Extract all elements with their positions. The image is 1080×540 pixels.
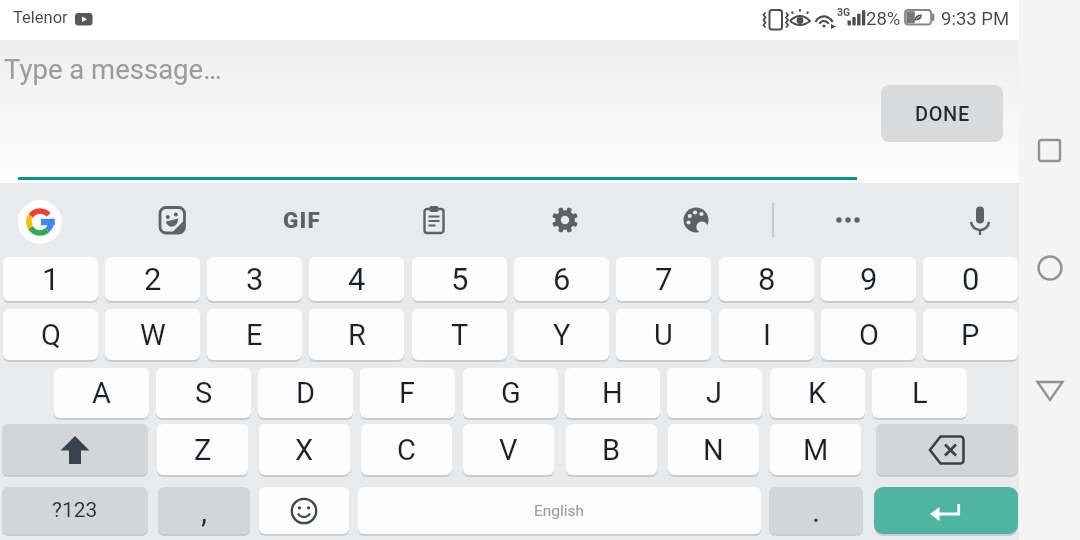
button[interactable]: N [668,424,759,475]
button[interactable]: ?123 [2,487,148,534]
button[interactable]: S [156,368,251,418]
button[interactable]: Z [157,424,248,475]
button[interactable]: I [719,309,814,360]
button[interactable]: U [616,309,711,360]
staticText: T [451,318,469,352]
button[interactable]: 0 [923,257,1018,301]
button[interactable]: T [412,309,507,360]
button[interactable]: Q [3,309,98,360]
button[interactable]: 4 [309,257,404,301]
button[interactable]: L [872,368,967,418]
staticText: Telenor [13,8,68,27]
staticText: 3G [837,6,851,18]
button[interactable]: 2 [105,257,200,301]
button[interactable]: G [463,368,558,418]
button[interactable]: X [259,424,350,475]
button[interactable]: H [565,368,660,418]
staticText: X [295,433,314,467]
staticText: GIF [283,207,322,233]
staticText: 8 [758,261,776,297]
button[interactable] [1031,132,1069,170]
button[interactable]: F [360,368,455,418]
staticText: O [859,318,879,352]
button[interactable]: W [105,309,200,360]
button[interactable]: M [770,424,861,475]
staticText: I [763,318,771,352]
button[interactable] [1031,372,1069,410]
button[interactable]: R [309,309,404,360]
button[interactable]: K [770,368,865,418]
button[interactable]: O [821,309,916,360]
button[interactable] [152,200,192,240]
button[interactable]: J [667,368,762,418]
staticText: . [812,493,821,529]
staticText: L [912,376,928,410]
staticText: Y [553,318,571,352]
staticText: W [140,318,166,352]
button[interactable]: Y [514,309,609,360]
staticText: H [602,376,623,410]
button[interactable]: 7 [616,257,711,301]
button[interactable] [676,200,716,240]
button[interactable]: GIF [276,202,328,238]
button[interactable] [414,200,454,240]
staticText: K [808,376,827,410]
button[interactable]: A [54,368,149,418]
button[interactable]: . [769,487,863,534]
staticText: English [534,502,585,520]
button[interactable]: D [258,368,353,418]
button[interactable]: English [358,487,761,534]
button[interactable]: 9 [821,257,916,301]
staticText: 6 [553,261,571,297]
staticText: Type a message… [4,53,222,85]
staticText: 9:33 PM [941,8,1010,30]
staticText: Q [41,318,61,352]
button[interactable] [1031,249,1069,287]
staticText: S [195,376,213,410]
button[interactable]: 5 [412,257,507,301]
button[interactable] [2,424,148,475]
staticText: R [348,318,366,352]
button[interactable] [876,424,1018,475]
staticText: ?123 [52,498,98,523]
staticText: D [296,376,316,410]
button[interactable]: B [566,424,657,475]
button[interactable]: 3 [207,257,302,301]
staticText: E [246,318,263,352]
staticText: V [499,433,518,467]
button[interactable] [0,40,1019,183]
staticText: M [803,433,829,467]
staticText: P [961,318,980,352]
button[interactable]: V [463,424,554,475]
staticText: J [706,376,723,410]
staticText: 9 [860,261,878,297]
staticText: , [201,493,208,529]
button[interactable] [259,487,349,534]
staticText: DONE [915,102,970,125]
staticText: F [399,376,416,410]
staticText: 4 [348,261,366,297]
button[interactable]: 1 [3,257,98,301]
button[interactable]: , [158,487,250,534]
staticText: 7 [655,261,673,297]
button[interactable] [545,200,585,240]
button[interactable]: E [207,309,302,360]
staticText: C [397,433,416,467]
button[interactable]: C [361,424,452,475]
button[interactable]: 8 [719,257,814,301]
staticText: 3 [246,261,264,297]
button[interactable] [18,200,62,244]
button[interactable]: 6 [514,257,609,301]
staticText: Z [194,433,212,467]
staticText: A [92,376,111,410]
staticText: 0 [962,261,980,297]
button[interactable] [874,487,1018,534]
button[interactable]: P [923,309,1018,360]
button[interactable] [960,198,1000,242]
staticText: N [703,433,724,467]
staticText: 5 [451,261,469,297]
staticText: 28% [866,8,901,30]
button[interactable] [828,200,868,240]
button[interactable]: DONE [881,85,1003,142]
staticText: U [654,318,673,352]
